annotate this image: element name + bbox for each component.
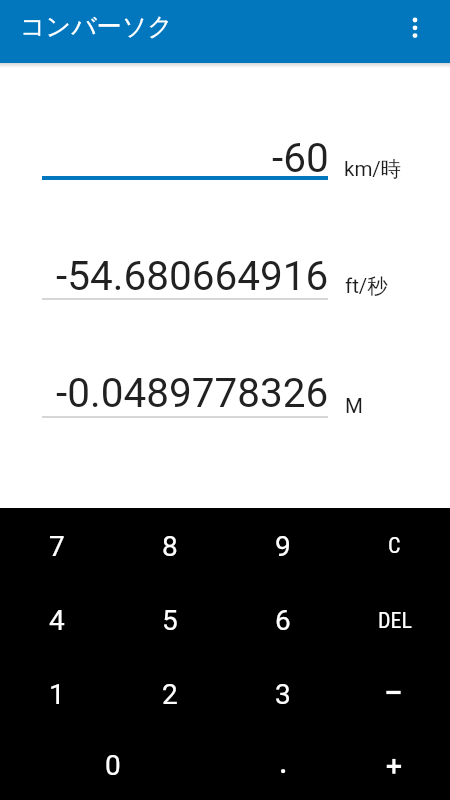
staticText: 3 xyxy=(275,678,291,711)
staticText: C xyxy=(388,533,401,559)
button[interactable]: 8 xyxy=(113,508,226,581)
button[interactable]: 4 xyxy=(0,581,113,654)
button[interactable]: 5 xyxy=(113,581,226,654)
button[interactable]: DEL xyxy=(339,581,450,654)
staticText: 2 xyxy=(162,678,178,711)
staticText: -0.0489778326 xyxy=(56,369,329,416)
button[interactable]: 6 xyxy=(226,581,339,654)
staticText: 4 xyxy=(49,604,65,637)
staticText: M xyxy=(345,394,363,418)
button[interactable]: 0 xyxy=(0,727,225,800)
staticText: 9 xyxy=(275,530,291,563)
button[interactable] xyxy=(225,727,338,800)
button[interactable] xyxy=(42,248,327,302)
staticText: DEL xyxy=(378,608,412,634)
button[interactable] xyxy=(402,0,450,63)
button[interactable]: 1 xyxy=(0,654,113,727)
button[interactable]: 3 xyxy=(226,654,339,727)
staticText: 6 xyxy=(275,604,291,637)
button[interactable]: 7 xyxy=(0,508,113,581)
staticText: 8 xyxy=(162,530,178,563)
staticText: 5 xyxy=(162,604,178,637)
staticText: -60 xyxy=(272,134,329,181)
button[interactable] xyxy=(338,727,450,800)
staticText: -54.680664916 xyxy=(56,252,329,299)
staticText: km/時 xyxy=(344,156,402,182)
staticText: 0 xyxy=(105,749,121,782)
staticText: ft/秒 xyxy=(345,273,388,299)
button[interactable]: 2 xyxy=(113,654,226,727)
button[interactable] xyxy=(42,365,327,419)
button[interactable]: 9 xyxy=(226,508,339,581)
staticText: コンバーソク xyxy=(20,11,173,42)
button[interactable]: C xyxy=(339,508,450,581)
staticText: 7 xyxy=(49,530,65,563)
button[interactable] xyxy=(339,654,450,727)
staticText: 1 xyxy=(49,678,65,711)
button[interactable] xyxy=(42,130,327,182)
